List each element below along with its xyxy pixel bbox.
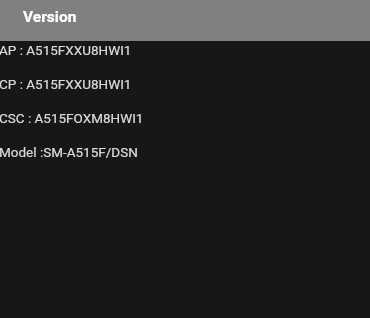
staticText: AP : A515FXXU8HWI1 [0,42,132,58]
staticText: CSC : A515FOXM8HWI1 [0,110,144,126]
staticText: Model :SM-A515F/DSN [0,144,138,160]
button[interactable]: CP : A515FXXU8HWI1 [0,76,370,110]
button[interactable]: CSC : A515FOXM8HWI1 [0,110,370,144]
staticText: Version [23,8,77,26]
staticText: CP : A515FXXU8HWI1 [0,76,132,92]
button[interactable]: Model :SM-A515F/DSN [0,144,370,178]
other: Version section header [0,0,370,41]
button[interactable]: AP : A515FXXU8HWI1 [0,42,370,76]
